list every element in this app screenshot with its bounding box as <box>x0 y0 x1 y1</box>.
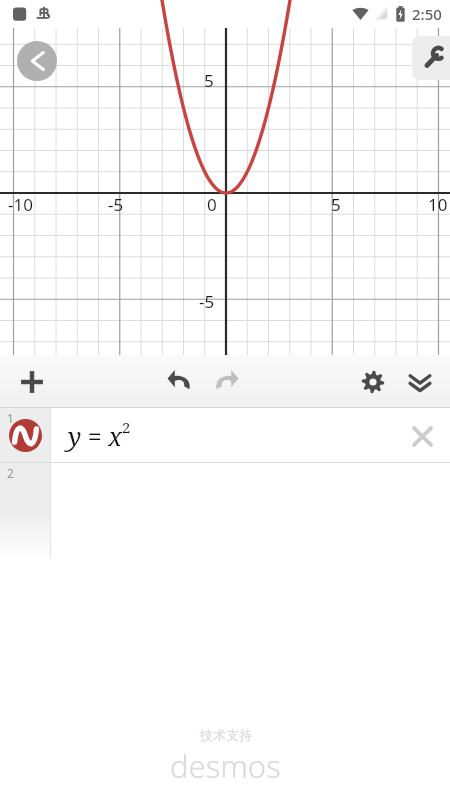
button[interactable]: Redo <box>204 360 248 404</box>
staticText: 2:50 <box>412 4 442 24</box>
button[interactable]: 1 <box>0 408 450 463</box>
staticText: desmos <box>170 745 281 787</box>
staticText: 10 <box>428 193 448 216</box>
button[interactable]: Add expression <box>10 360 54 404</box>
staticText: -10 <box>8 193 33 216</box>
staticText: 0 <box>207 193 217 216</box>
button[interactable]: Back <box>17 41 57 81</box>
button[interactable]: Collapse <box>398 360 442 404</box>
staticText: 2 <box>7 465 14 481</box>
staticText: 1 <box>7 410 14 426</box>
staticText: 5 <box>331 193 341 216</box>
staticText: 技术支持 <box>200 727 252 743</box>
staticText: 5 <box>204 69 214 92</box>
button[interactable]: Undo <box>158 360 202 404</box>
staticText: 2 <box>122 417 131 437</box>
staticText: -5 <box>199 290 215 313</box>
button[interactable]: Tools <box>412 36 450 80</box>
button[interactable]: Settings <box>351 360 395 404</box>
staticText: -5 <box>108 193 124 216</box>
button[interactable]: Delete expression <box>402 416 442 456</box>
button[interactable]: 2 <box>0 463 450 519</box>
staticText: y = x <box>68 419 122 453</box>
